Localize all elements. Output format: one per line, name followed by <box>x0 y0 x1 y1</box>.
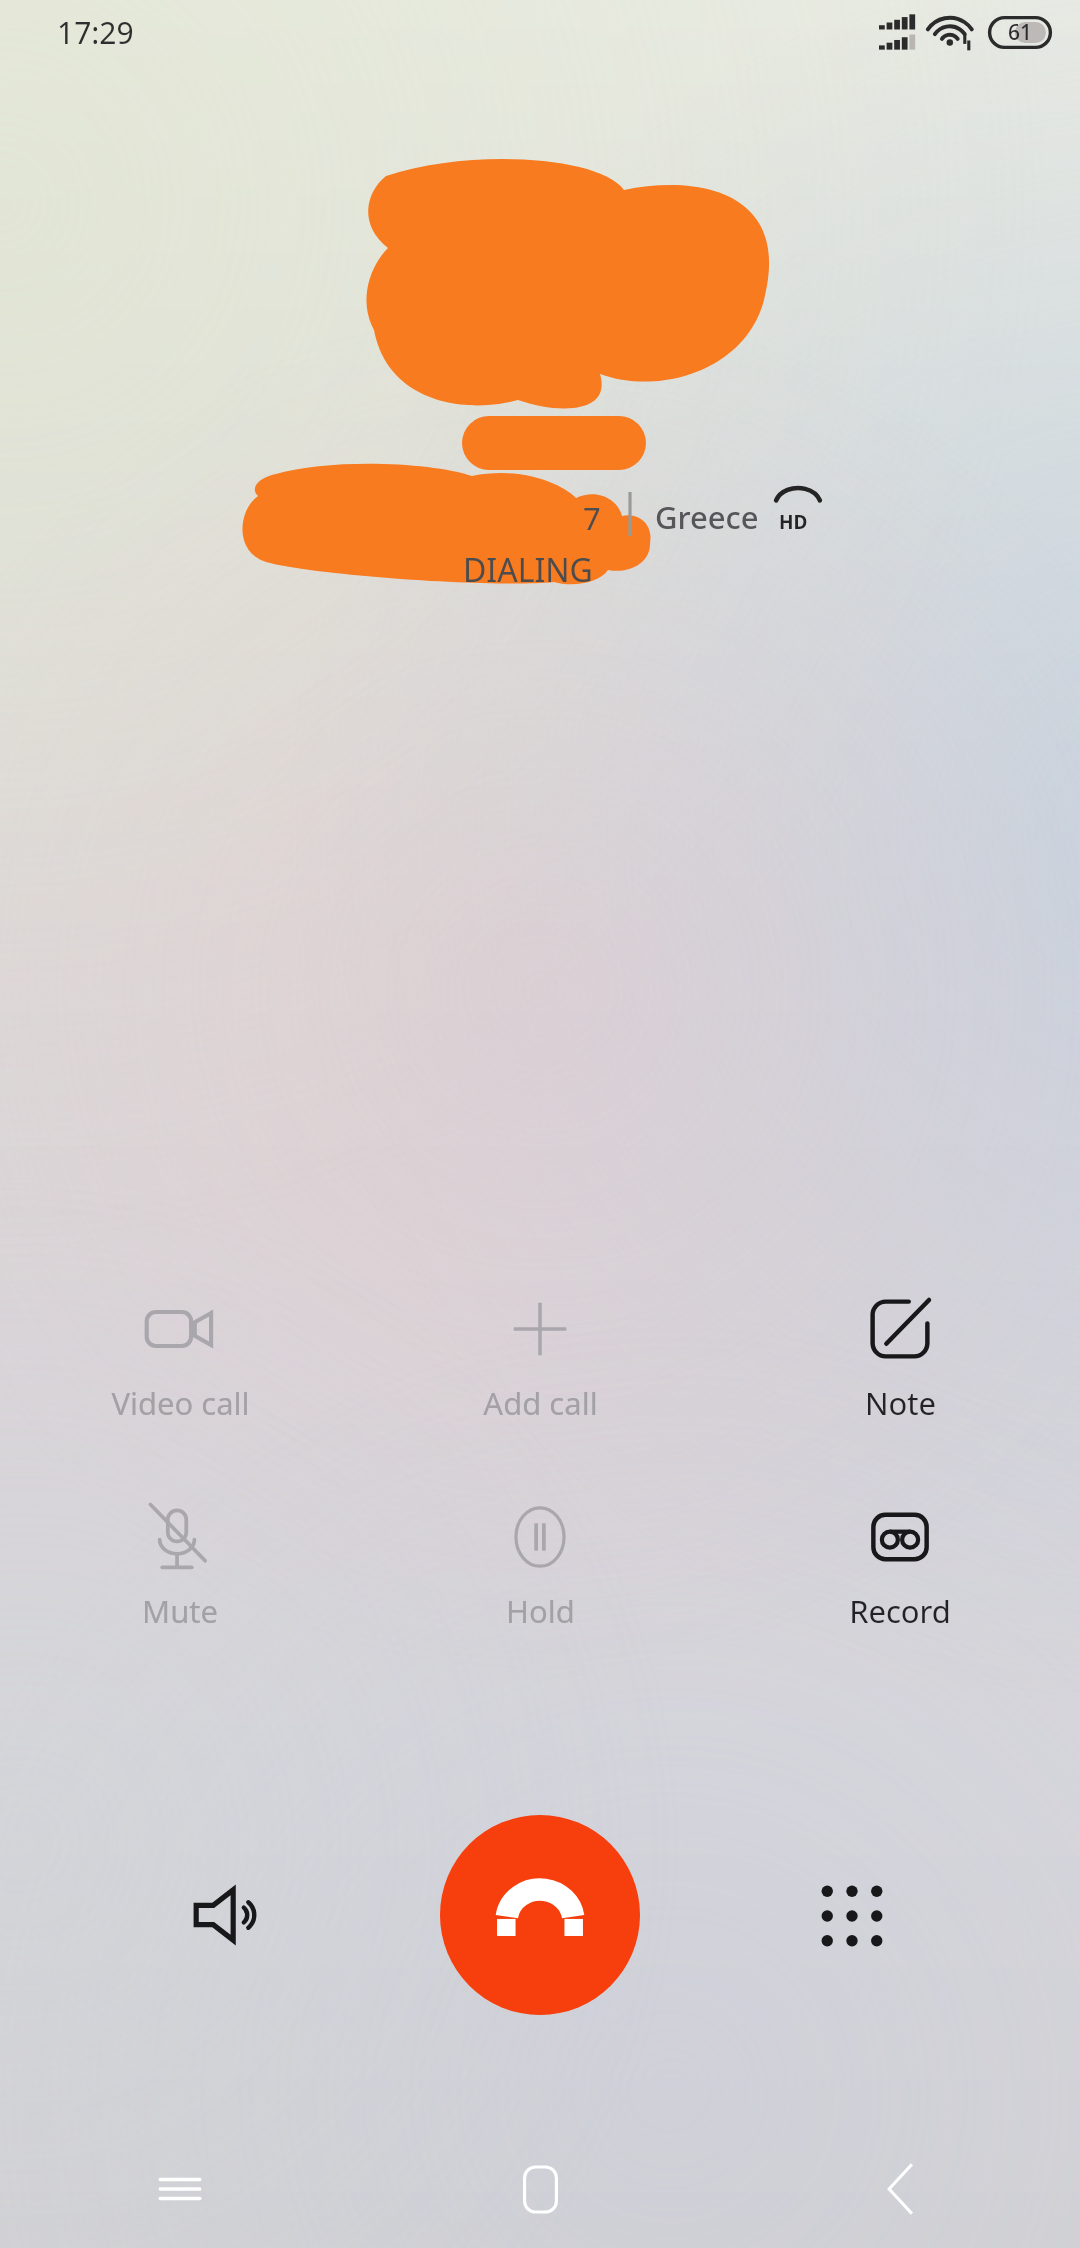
staticText: 17:29 <box>57 12 134 53</box>
button[interactable]: Hold <box>360 1494 720 1638</box>
button[interactable]: Add call <box>360 1286 720 1430</box>
staticText: Greece <box>655 496 759 538</box>
button[interactable]: Video call <box>0 1286 360 1430</box>
button[interactable]: Back <box>720 2130 1080 2248</box>
staticText: Video call <box>111 1382 250 1424</box>
button[interactable]: Keypad <box>792 1856 912 1976</box>
button[interactable]: Speaker <box>168 1855 288 1975</box>
button[interactable]: Record <box>720 1494 1080 1638</box>
button[interactable]: Recents <box>0 2130 360 2248</box>
staticText: Hold <box>506 1590 575 1632</box>
staticText: Add call <box>483 1382 598 1424</box>
staticText: Note <box>865 1382 936 1424</box>
staticText: Mute <box>142 1590 218 1632</box>
staticText: Record <box>849 1590 951 1632</box>
button[interactable]: Home <box>360 2130 720 2248</box>
button[interactable]: End call <box>440 1815 640 2015</box>
button[interactable]: Note <box>720 1286 1080 1430</box>
staticText: HD <box>779 509 808 535</box>
staticText: 61 <box>1008 18 1033 47</box>
button[interactable]: Mute <box>0 1494 360 1638</box>
staticText: 7 <box>583 497 601 539</box>
staticText: DIALING <box>463 548 593 592</box>
